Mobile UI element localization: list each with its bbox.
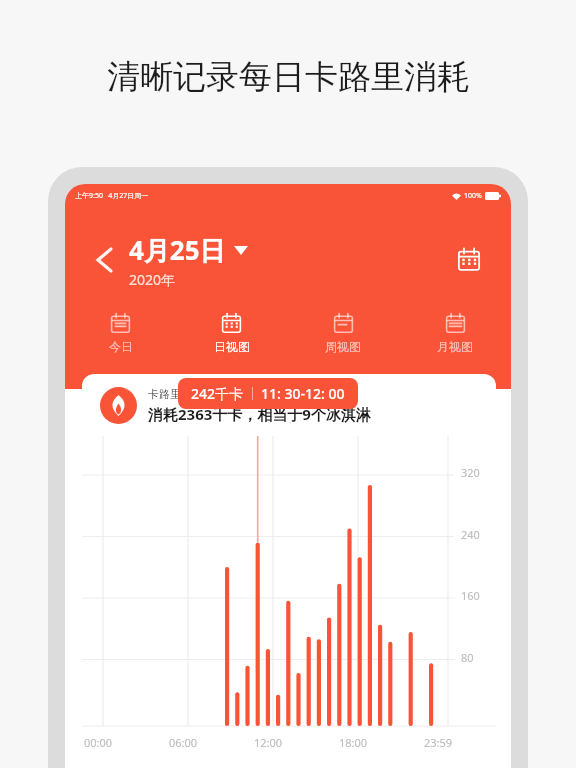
staticText: 06:00 [169, 735, 198, 750]
button[interactable]: Previous day [87, 243, 121, 277]
staticText: 240 [461, 527, 480, 542]
staticText: 12:00 [254, 735, 283, 750]
staticText: 今日 [109, 339, 133, 354]
staticText: 320 [461, 465, 480, 480]
staticText: 18:00 [339, 735, 368, 750]
staticText: 日视图 [214, 339, 250, 354]
button[interactable]: 242千卡 [178, 378, 358, 409]
staticText: 00:00 [84, 735, 113, 750]
staticText: 2020年 [129, 270, 176, 289]
staticText: 23:59 [424, 735, 453, 750]
staticText: 月视图 [437, 339, 473, 354]
staticText: 消耗2363千卡，相当于9个冰淇淋 [148, 404, 371, 424]
staticText: 卡路里 [148, 387, 181, 401]
button[interactable]: 今日 [65, 302, 176, 364]
button[interactable]: 4月25日 [129, 232, 248, 289]
staticText: 160 [461, 588, 480, 603]
staticText: 上午9:50 4月27日周一 [75, 191, 149, 201]
staticText: 周视图 [325, 339, 361, 354]
button[interactable]: 月视图 [399, 302, 511, 364]
staticText: 11: 30-12: 00 [261, 384, 345, 403]
button[interactable]: 周视图 [287, 302, 399, 364]
staticText: 80 [461, 650, 474, 665]
button[interactable]: Calendar [449, 240, 489, 280]
staticText: 清晰记录每日卡路里消耗 [107, 56, 470, 98]
staticText: 242千卡 [191, 384, 244, 403]
staticText: 100% [464, 191, 482, 201]
button[interactable]: 日视图 [176, 302, 287, 364]
staticText: 4月25日 [129, 232, 226, 268]
